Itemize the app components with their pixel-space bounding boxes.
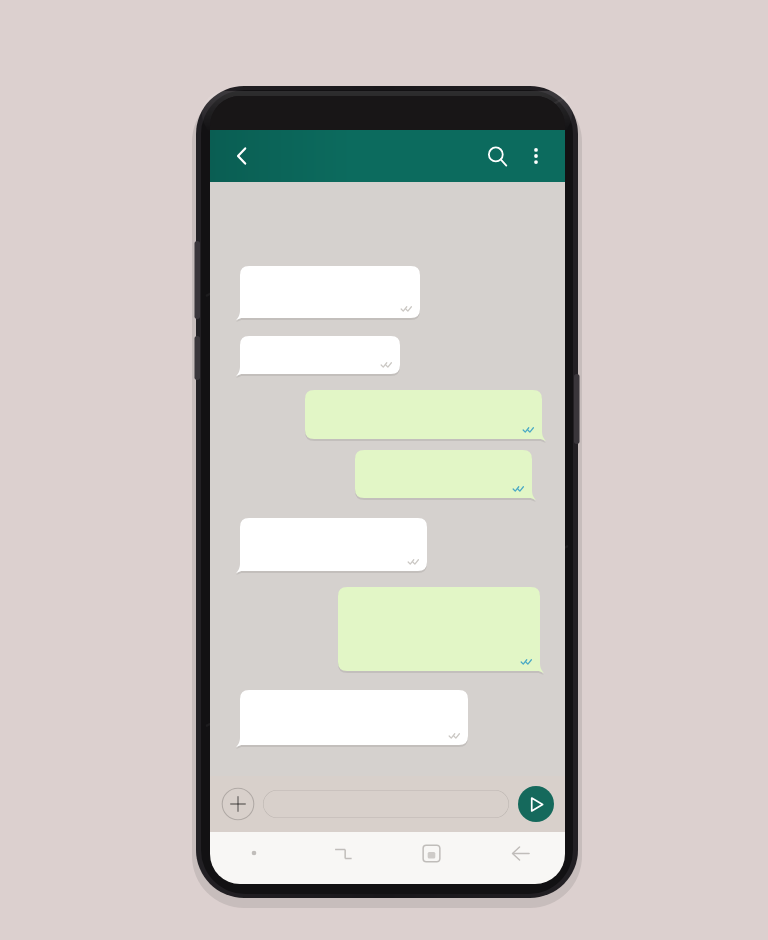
button[interactable]: Sent message	[338, 587, 540, 671]
button[interactable]: Received message	[240, 690, 468, 745]
button[interactable]: Search	[477, 136, 517, 176]
button[interactable]: Back	[476, 832, 565, 874]
button[interactable]: Home	[387, 832, 476, 874]
button[interactable]: Message	[263, 790, 509, 818]
button[interactable]: Sent message	[305, 390, 542, 439]
button[interactable]: Received message	[240, 266, 420, 318]
button[interactable]: More options	[517, 137, 555, 175]
button[interactable]: Send	[518, 786, 554, 822]
button[interactable]: Back	[224, 138, 260, 174]
button[interactable]: Received message	[240, 518, 427, 571]
button[interactable]: Received message	[240, 336, 400, 374]
button[interactable]: Recents	[298, 832, 387, 874]
button[interactable]: Sent message	[355, 450, 532, 498]
button[interactable]: Attach	[221, 787, 255, 821]
